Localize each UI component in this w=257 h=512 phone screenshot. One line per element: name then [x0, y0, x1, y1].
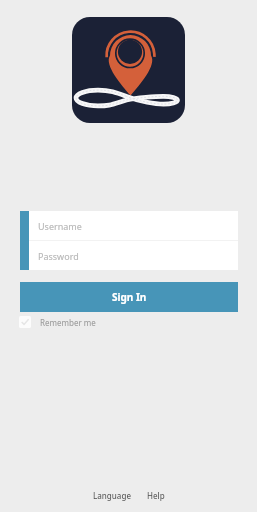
staticText: Language: [93, 490, 131, 501]
staticText: Help: [147, 490, 165, 501]
button[interactable]: Username: [29, 211, 238, 240]
button[interactable]: Password: [29, 241, 238, 270]
button[interactable]: Help: [147, 490, 165, 501]
button[interactable]: Sign In: [20, 282, 238, 312]
button[interactable]: Language: [93, 490, 131, 501]
staticText: Sign In: [112, 290, 147, 304]
button[interactable]: Remember me: [19, 316, 96, 328]
staticText: Username: [38, 220, 82, 232]
staticText: Remember me: [40, 317, 96, 328]
staticText: Password: [38, 250, 79, 262]
